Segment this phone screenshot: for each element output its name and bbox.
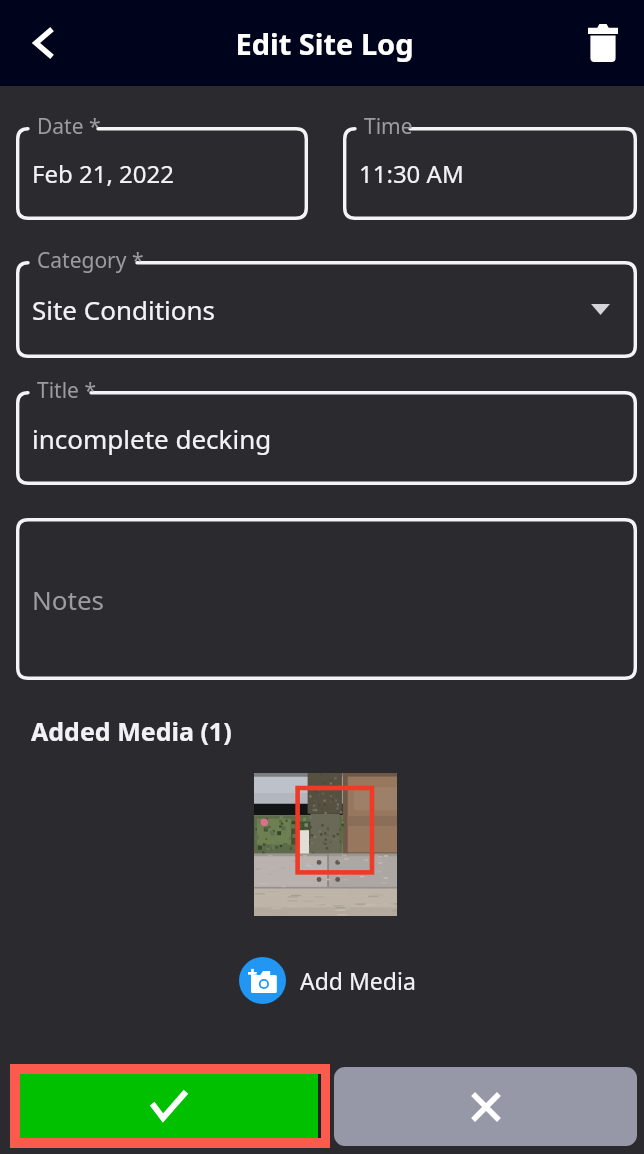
staticText: Title * bbox=[37, 376, 96, 405]
staticText: Edit Site Log bbox=[235, 24, 414, 63]
button[interactable]: Title bbox=[16, 391, 637, 485]
staticText: Added Media (1) bbox=[31, 714, 232, 748]
button[interactable]: Time bbox=[343, 127, 637, 220]
button[interactable]: Save bbox=[10, 1064, 330, 1148]
staticText: Feb 21, 2022 bbox=[32, 157, 175, 190]
button[interactable]: Back bbox=[16, 16, 70, 70]
staticText: incomplete decking bbox=[32, 421, 272, 456]
button[interactable]: Photo bbox=[254, 773, 397, 916]
staticText: 11:30 AM bbox=[359, 157, 464, 190]
button[interactable]: Notes bbox=[16, 518, 637, 680]
button[interactable]: Add Media bbox=[239, 957, 416, 1004]
staticText: Add Media bbox=[300, 965, 416, 996]
button[interactable]: Cancel bbox=[334, 1067, 637, 1146]
button[interactable]: Category bbox=[16, 261, 637, 358]
staticText: Category * bbox=[37, 246, 144, 275]
button[interactable]: Date bbox=[16, 127, 308, 220]
staticText: Time bbox=[364, 112, 413, 141]
staticText: Site Conditions bbox=[32, 292, 216, 327]
staticText: Date * bbox=[37, 112, 101, 141]
staticText: Notes bbox=[32, 582, 104, 617]
button[interactable]: Delete bbox=[576, 16, 630, 70]
